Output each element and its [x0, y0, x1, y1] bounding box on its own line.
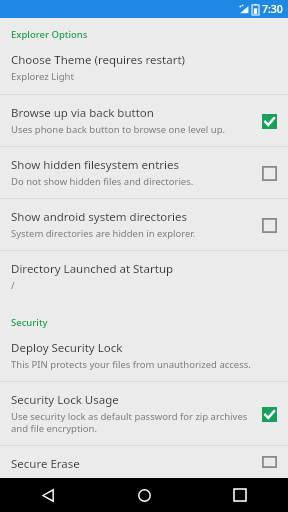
staticText: Do not show hidden files and directories…: [11, 175, 194, 188]
button[interactable]: Deploy Security Lock: [0, 334, 288, 381]
button[interactable]: Recent apps: [192, 478, 288, 512]
staticText: Explorez Light: [11, 70, 74, 83]
staticText: Directory Launched at Startup: [11, 261, 174, 277]
staticText: Browse up via back button: [11, 105, 154, 121]
staticText: Secure Erase: [11, 456, 80, 468]
button[interactable]: Secure Erase: [0, 446, 288, 478]
button[interactable]: Show android system directories: [0, 199, 288, 250]
button[interactable]: Directory Launched at Startup: [0, 251, 288, 302]
button[interactable]: Back: [0, 478, 96, 512]
staticText: Show hidden filesystem entries: [11, 157, 180, 173]
button[interactable]: Show hidden filesystem entries: [0, 147, 288, 198]
staticText: Deploy Security Lock: [11, 340, 123, 356]
staticText: Security: [11, 316, 48, 329]
staticText: This PIN protects your files from unauth…: [11, 358, 251, 371]
staticText: Choose Theme (requires restart): [11, 52, 186, 68]
staticText: Uses phone back button to browse one lev…: [11, 123, 226, 136]
button[interactable]: Choose Theme (requires restart): [0, 46, 288, 94]
button[interactable]: Browse up via back button: [0, 95, 288, 146]
button[interactable]: Security Lock Usage: [0, 382, 288, 445]
staticText: Show android system directories: [11, 209, 187, 225]
staticText: Use security lock as default password fo…: [11, 410, 252, 435]
staticText: 7:30: [262, 2, 283, 16]
staticText: Security Lock Usage: [11, 392, 119, 408]
staticText: System directories are hidden in explore…: [11, 227, 196, 240]
staticText: /: [11, 279, 15, 292]
staticText: Explorer Options: [11, 28, 88, 41]
button[interactable]: Home: [96, 478, 192, 512]
